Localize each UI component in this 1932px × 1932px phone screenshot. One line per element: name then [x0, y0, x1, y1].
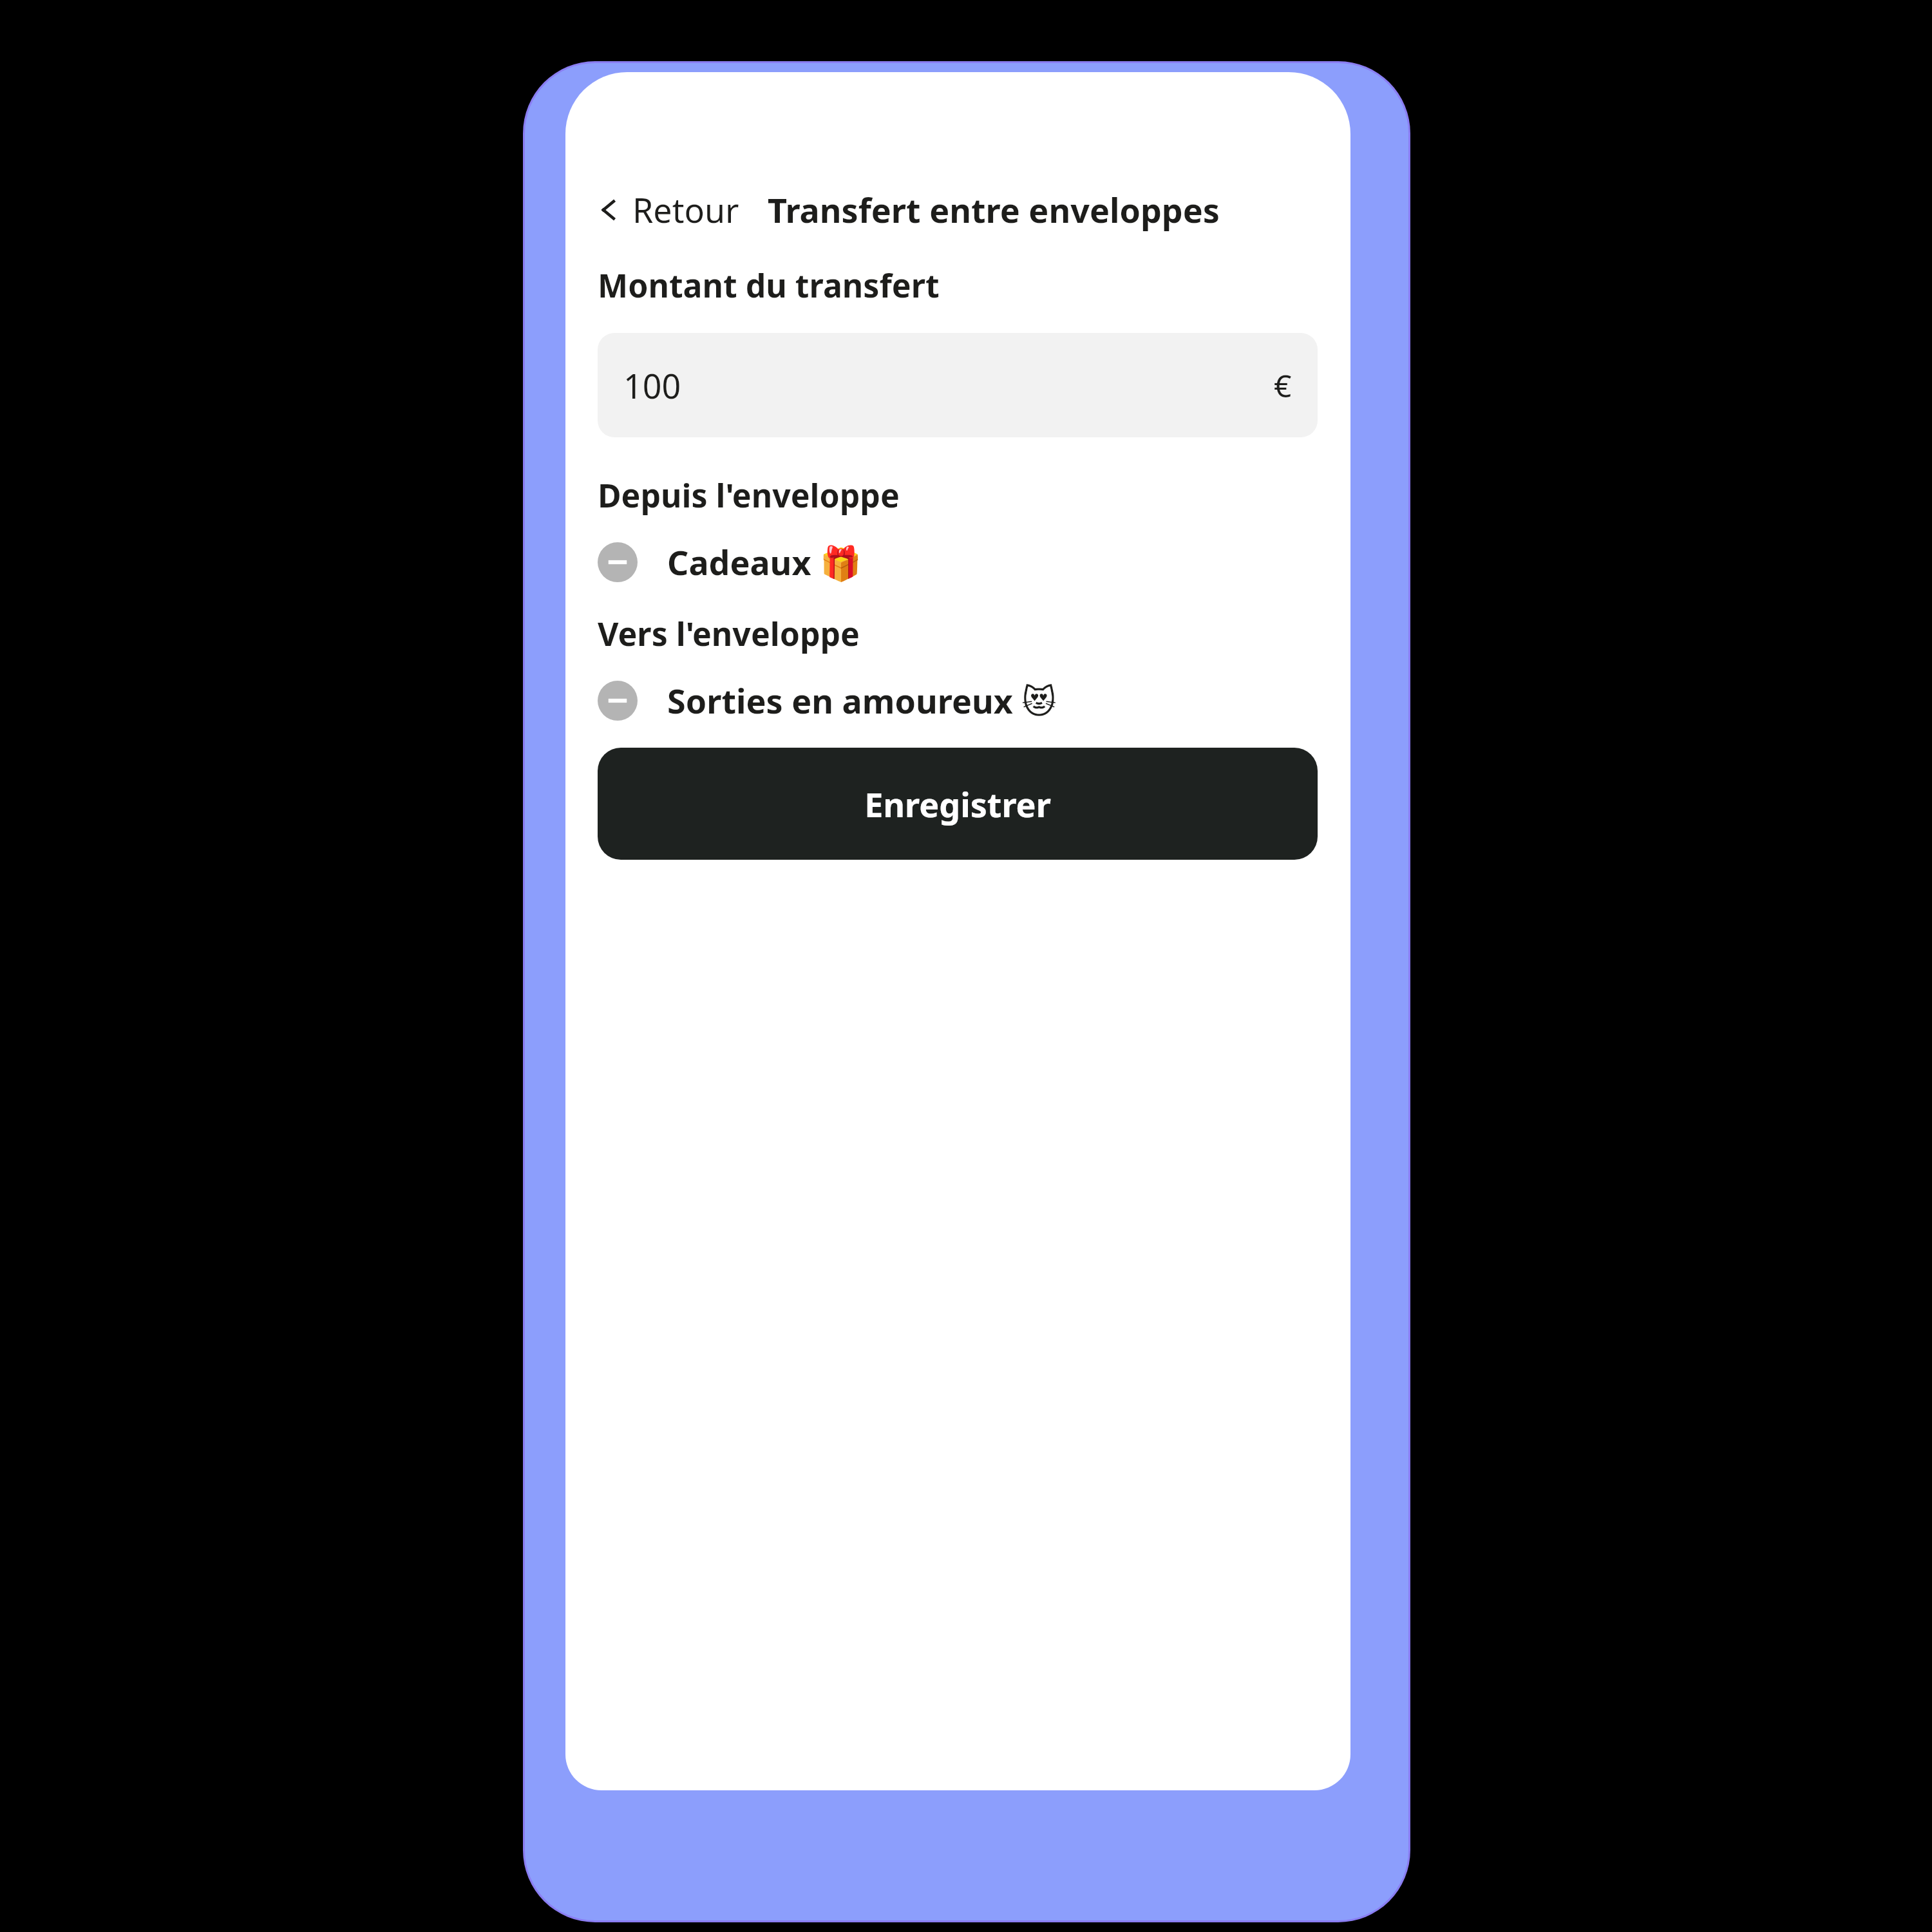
button[interactable]: Enregistrer — [598, 748, 1318, 860]
button[interactable]: Retour — [598, 187, 746, 232]
staticText: Vers l'enveloppe — [598, 612, 860, 656]
button[interactable]: 100 — [598, 333, 1318, 437]
staticText: Enregistrer — [864, 781, 1051, 827]
staticText: € — [1274, 365, 1292, 406]
staticText: Retour — [632, 187, 739, 232]
staticText: Depuis l'enveloppe — [598, 473, 900, 517]
other: Retirer — [598, 681, 638, 721]
other: Retirer — [598, 542, 638, 582]
staticText: Transfert entre enveloppes — [768, 187, 1220, 232]
staticText: Sorties en amoureux 😻 — [667, 677, 1057, 723]
other: Retour — [598, 197, 623, 223]
button[interactable]: Retirer — [598, 539, 1318, 585]
staticText: 100 — [623, 363, 681, 408]
button[interactable]: Retirer — [598, 677, 1318, 723]
staticText: Montant du transfert — [598, 263, 940, 307]
staticText: Cadeaux 🎁 — [667, 539, 862, 585]
